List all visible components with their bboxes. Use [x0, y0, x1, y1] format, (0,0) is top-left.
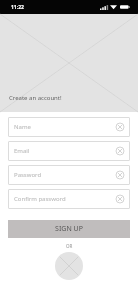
button[interactable]: Clear Name	[116, 123, 124, 131]
button[interactable]: Clear Email	[116, 147, 124, 155]
staticText: Password	[14, 171, 42, 179]
button[interactable]: Password	[8, 165, 130, 185]
staticText: SIGN UP	[55, 224, 83, 234]
staticText: 11:22	[11, 4, 24, 11]
button[interactable]: Name	[8, 117, 130, 137]
button[interactable]: Clear Confirm password	[116, 195, 124, 203]
staticText: Email	[14, 147, 30, 155]
button[interactable]: SIGN UP	[8, 220, 130, 238]
button[interactable]: Clear Password	[116, 171, 124, 179]
staticText: Name	[14, 123, 31, 131]
button[interactable]: Confirm password	[8, 189, 130, 209]
button[interactable]: Email	[8, 141, 130, 161]
button[interactable]: Sign up with social account	[55, 252, 83, 280]
staticText: OR	[66, 243, 73, 249]
staticText: Create an account!	[9, 94, 62, 102]
staticText: Confirm password	[14, 195, 66, 203]
